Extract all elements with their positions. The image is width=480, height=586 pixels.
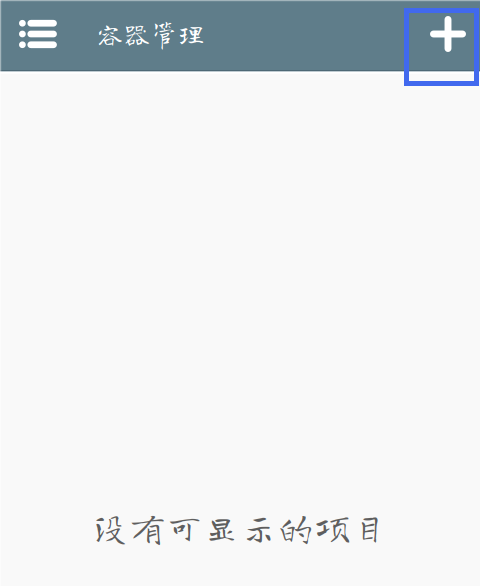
staticText: 没有可显示的项目 [92, 508, 388, 546]
button[interactable]: Menu [0, 0, 60, 70]
button[interactable]: Add [404, 8, 479, 86]
staticText: 容器管理 [97, 20, 205, 47]
